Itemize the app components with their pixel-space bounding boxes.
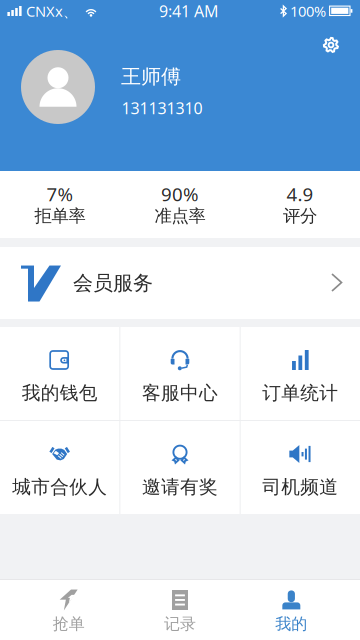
staticText: 我的: [275, 614, 307, 634]
staticText: 客服中心: [142, 381, 218, 404]
staticText: 我的钱包: [22, 381, 98, 404]
button[interactable]: 我的: [236, 580, 347, 640]
button[interactable]: 我的钱包: [0, 327, 119, 420]
staticText: 拒单率: [34, 205, 85, 227]
staticText: 7%: [46, 182, 73, 206]
staticText: 4.9: [286, 182, 313, 206]
staticText: 王师傅: [121, 64, 181, 89]
staticText: 评分: [283, 205, 317, 227]
staticText: 城市合伙人: [12, 475, 107, 498]
button[interactable]: 客服中心: [120, 327, 240, 420]
staticText: 131131310: [121, 97, 202, 119]
button[interactable]: 记录: [124, 580, 236, 640]
button[interactable]: 司机频道: [241, 421, 360, 514]
staticText: 邀请有奖: [142, 475, 218, 498]
button[interactable]: Settings: [315, 29, 347, 61]
staticText: 抢单: [53, 614, 85, 634]
button[interactable]: 抢单: [13, 580, 124, 640]
button[interactable]: 订单统计: [241, 327, 360, 420]
staticText: 90%: [161, 182, 199, 206]
staticText: 会员服务: [73, 271, 153, 295]
button[interactable]: 城市合伙人: [0, 421, 119, 514]
staticText: 司机频道: [262, 475, 338, 498]
button[interactable]: 会员服务: [0, 247, 360, 319]
staticText: 记录: [164, 614, 196, 634]
button[interactable]: 邀请有奖: [120, 421, 240, 514]
staticText: 准点率: [154, 205, 205, 227]
staticText: CNXx、: [26, 1, 78, 21]
staticText: 9:41 AM: [159, 0, 219, 22]
staticText: 100%: [290, 1, 326, 21]
staticText: 订单统计: [262, 381, 338, 404]
